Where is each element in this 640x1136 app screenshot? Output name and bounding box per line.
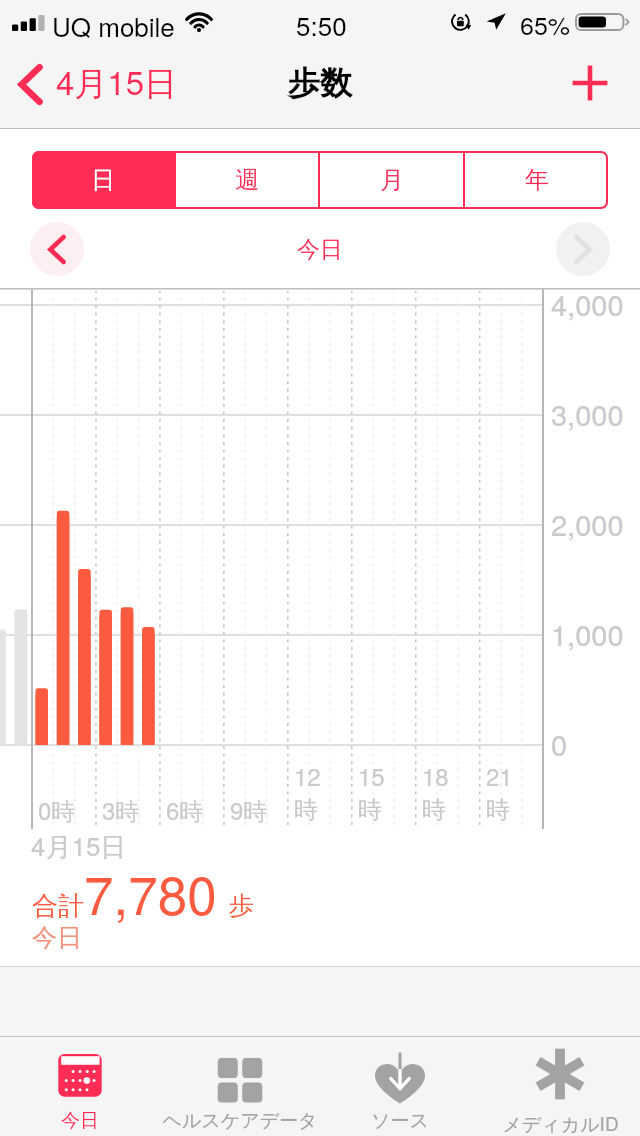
staticText: 15 (358, 758, 385, 792)
button[interactable]: メディカルID (480, 1037, 640, 1136)
button[interactable]: 年 (465, 151, 608, 209)
button[interactable]: ソース (320, 1037, 480, 1136)
staticText: 今日 (61, 1109, 99, 1133)
staticText: 歩数 (288, 63, 352, 103)
staticText: 9時 (230, 792, 268, 827)
staticText: 3,000 (551, 393, 624, 435)
staticText: 月 (380, 165, 404, 195)
staticText: 時 (358, 795, 382, 825)
staticText: ソース (371, 1109, 429, 1133)
button[interactable]: 日 (32, 151, 174, 209)
staticText: 65% (520, 6, 571, 42)
button[interactable]: 週 (176, 151, 318, 209)
staticText: 4,000 (551, 283, 624, 325)
staticText: 12 (294, 758, 321, 792)
button[interactable]: 4月15日 (0, 58, 188, 110)
staticText: 今日 (297, 235, 343, 264)
staticText: 4月15日 (31, 826, 127, 864)
button[interactable]: Previous day (30, 222, 84, 276)
staticText: 3時 (102, 792, 140, 827)
staticText: 4月15日 (56, 57, 178, 105)
staticText: 時 (422, 795, 446, 825)
staticText: 21 (486, 758, 513, 792)
staticText: 今日 (32, 922, 82, 953)
staticText: ヘルスケアデータ (162, 1109, 318, 1133)
staticText: 合計 (32, 890, 84, 923)
staticText: 1,000 (551, 613, 624, 655)
staticText: 6時 (166, 792, 204, 827)
staticText: 時 (294, 795, 318, 825)
staticText: 日 (91, 165, 115, 195)
button[interactable]: ヘルスケアデータ (160, 1037, 320, 1136)
staticText: 2,000 (551, 503, 624, 545)
staticText: 歩 (229, 890, 254, 921)
staticText: メディカルID (502, 1109, 619, 1136)
staticText: 0時 (38, 792, 76, 827)
staticText: 時 (486, 795, 510, 825)
staticText: 週 (235, 165, 259, 195)
button[interactable]: Add (567, 60, 613, 106)
staticText: 18 (422, 758, 449, 792)
button[interactable]: 今日 (0, 1037, 160, 1136)
button[interactable]: Next day (556, 222, 610, 276)
staticText: 年 (525, 165, 549, 195)
staticText: 7,780 (84, 854, 217, 930)
staticText: 0 (551, 723, 568, 765)
button[interactable]: 月 (320, 151, 463, 209)
staticText: 5:50 (296, 6, 347, 43)
staticText: UQ mobile (52, 7, 175, 44)
